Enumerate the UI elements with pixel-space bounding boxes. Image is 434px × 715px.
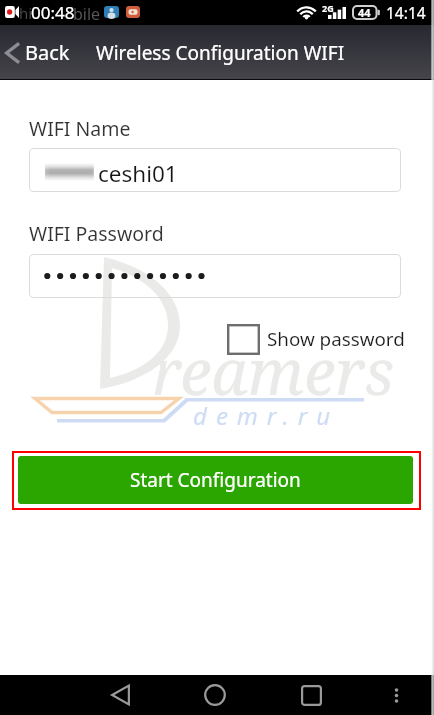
staticText: Back [25, 39, 70, 66]
staticText: Show password [267, 326, 405, 352]
staticText: WIFI Name [29, 115, 131, 142]
staticText: Start Configuration [130, 467, 301, 493]
staticText: 00:48 [31, 1, 75, 24]
button[interactable]: More options [380, 675, 412, 715]
staticText: 14:14 [386, 2, 426, 23]
button[interactable]: Back [104, 675, 136, 715]
staticText: 44 [358, 5, 371, 20]
staticText: Wireless Configuration WIFI [96, 40, 345, 66]
staticText: ceshi01 [98, 158, 178, 189]
button[interactable]: Start Configuration [18, 456, 413, 504]
staticText: hi [19, 3, 33, 23]
staticText: 2G [322, 2, 334, 14]
staticText: WIFI Password [29, 220, 164, 247]
button[interactable]: Recents [295, 675, 327, 715]
staticText: reamers [152, 328, 394, 414]
button[interactable]: Home [199, 675, 231, 715]
staticText: demr.ru [193, 399, 340, 432]
button[interactable]: Back [2, 25, 434, 80]
button[interactable]: Show password [227, 324, 405, 355]
staticText: bile [73, 3, 101, 25]
